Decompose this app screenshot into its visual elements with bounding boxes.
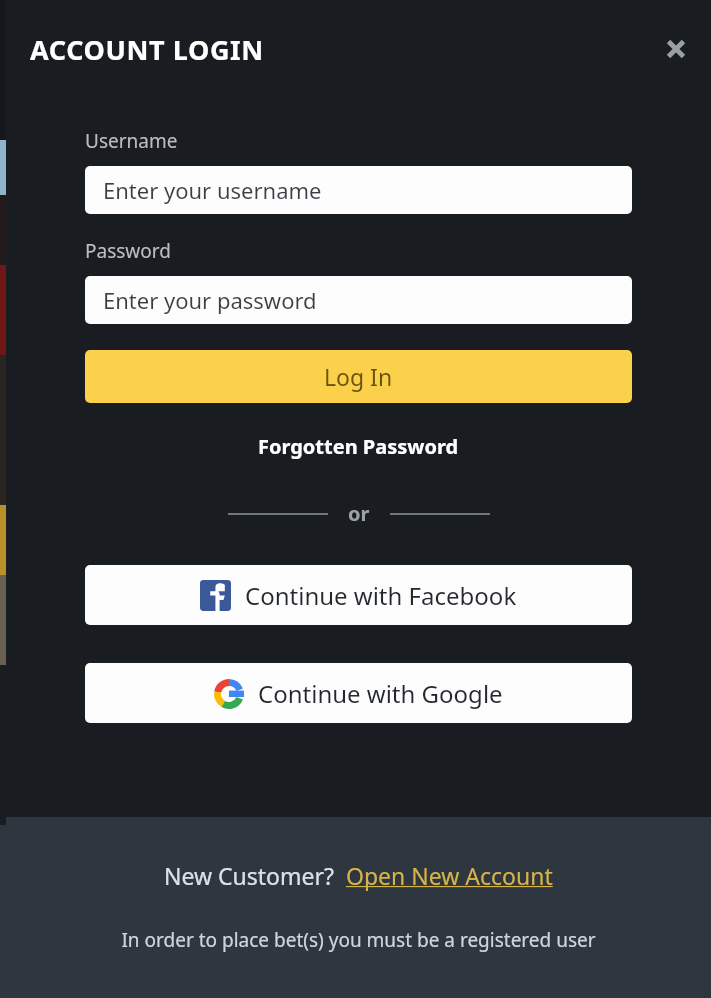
button[interactable]: Continue with Facebook (85, 565, 632, 625)
staticText: Password (85, 238, 171, 264)
staticText: Log In (324, 361, 393, 392)
button[interactable]: Log In (85, 350, 632, 403)
staticText: Enter your password (103, 285, 317, 315)
button[interactable]: Open New Account (346, 860, 553, 891)
button[interactable]: Enter your username (85, 166, 632, 214)
button[interactable]: Close (652, 25, 700, 73)
staticText: Username (85, 128, 178, 154)
staticText: Enter your username (103, 175, 322, 205)
button[interactable]: Forgotten Password (258, 433, 459, 460)
staticText: Continue with Facebook (245, 579, 517, 612)
staticText: or (348, 500, 370, 527)
staticText: New Customer? (164, 860, 334, 891)
staticText: Continue with Google (258, 677, 503, 710)
button[interactable]: Enter your password (85, 276, 632, 324)
button[interactable]: Continue with Google (85, 663, 632, 723)
staticText: ACCOUNT LOGIN (30, 31, 264, 68)
staticText: In order to place bet(s) you must be a r… (121, 927, 596, 953)
